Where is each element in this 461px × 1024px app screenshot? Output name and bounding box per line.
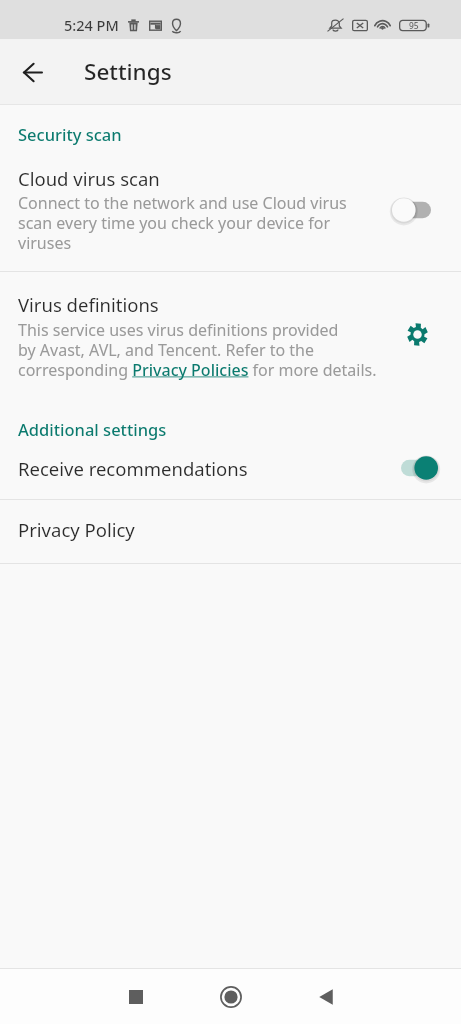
staticText: 95 [409,20,419,32]
button[interactable]: Home [207,973,255,1021]
button[interactable]: Cloud virus scan [0,145,461,271]
button[interactable]: Settings [395,312,439,356]
staticText: Security scan [18,123,122,145]
staticText: Settings [84,56,172,87]
staticText: 5:24 PM [64,15,119,35]
staticText: Connect to the network and use Cloud vir… [18,192,347,253]
button[interactable]: Recents [112,973,160,1021]
staticText: Virus definitions [18,292,159,317]
button[interactable]: Privacy Policy [0,500,461,563]
staticText: Privacy Policy [18,517,135,542]
staticText: Additional settings [18,418,167,440]
staticText: Receive recommendations [18,456,392,481]
button[interactable]: Back [5,44,61,100]
staticText: This service uses virus definitions prov… [18,319,377,380]
button[interactable]: Toggle on [392,454,440,482]
button[interactable]: Virus definitions [0,272,461,380]
button[interactable]: Back [302,973,350,1021]
button[interactable]: Toggle off [392,196,440,224]
button[interactable]: Receive recommendations [0,440,461,499]
staticText: Cloud virus scan [18,166,160,191]
